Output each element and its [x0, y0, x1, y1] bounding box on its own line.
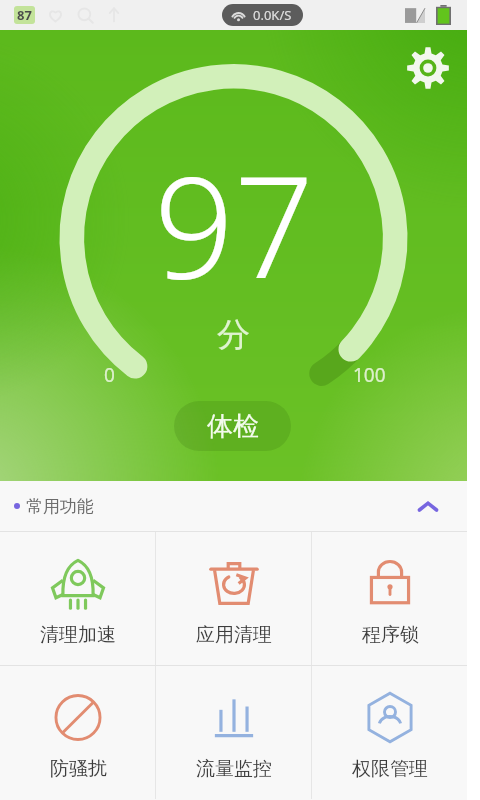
staticText: 权限管理 [352, 757, 428, 781]
button[interactable]: 防骚扰 [0, 666, 155, 799]
button[interactable]: 程序锁 [312, 532, 467, 665]
button[interactable]: 体检 [174, 401, 291, 451]
staticText: 程序锁 [362, 623, 419, 647]
staticText: 防骚扰 [50, 757, 107, 781]
staticText: 体检 [207, 410, 259, 443]
staticText: 97 [154, 128, 314, 319]
button[interactable]: 流量监控 [156, 666, 311, 799]
staticText: 分 [217, 314, 250, 356]
staticText: 应用清理 [196, 623, 272, 647]
staticText: 流量监控 [196, 757, 272, 781]
button[interactable]: Collapse section [408, 486, 448, 526]
button[interactable]: 清理加速 [0, 532, 155, 665]
staticText: 0 [104, 362, 115, 388]
button[interactable]: 权限管理 [312, 666, 467, 799]
staticText: 常用功能 [26, 496, 94, 517]
staticText: 87 [17, 6, 32, 24]
staticText: 100 [353, 362, 386, 388]
staticText: 清理加速 [40, 623, 116, 647]
button[interactable]: 应用清理 [156, 532, 311, 665]
button[interactable]: Settings [404, 44, 452, 92]
staticText: 0.0K/S [253, 6, 292, 24]
